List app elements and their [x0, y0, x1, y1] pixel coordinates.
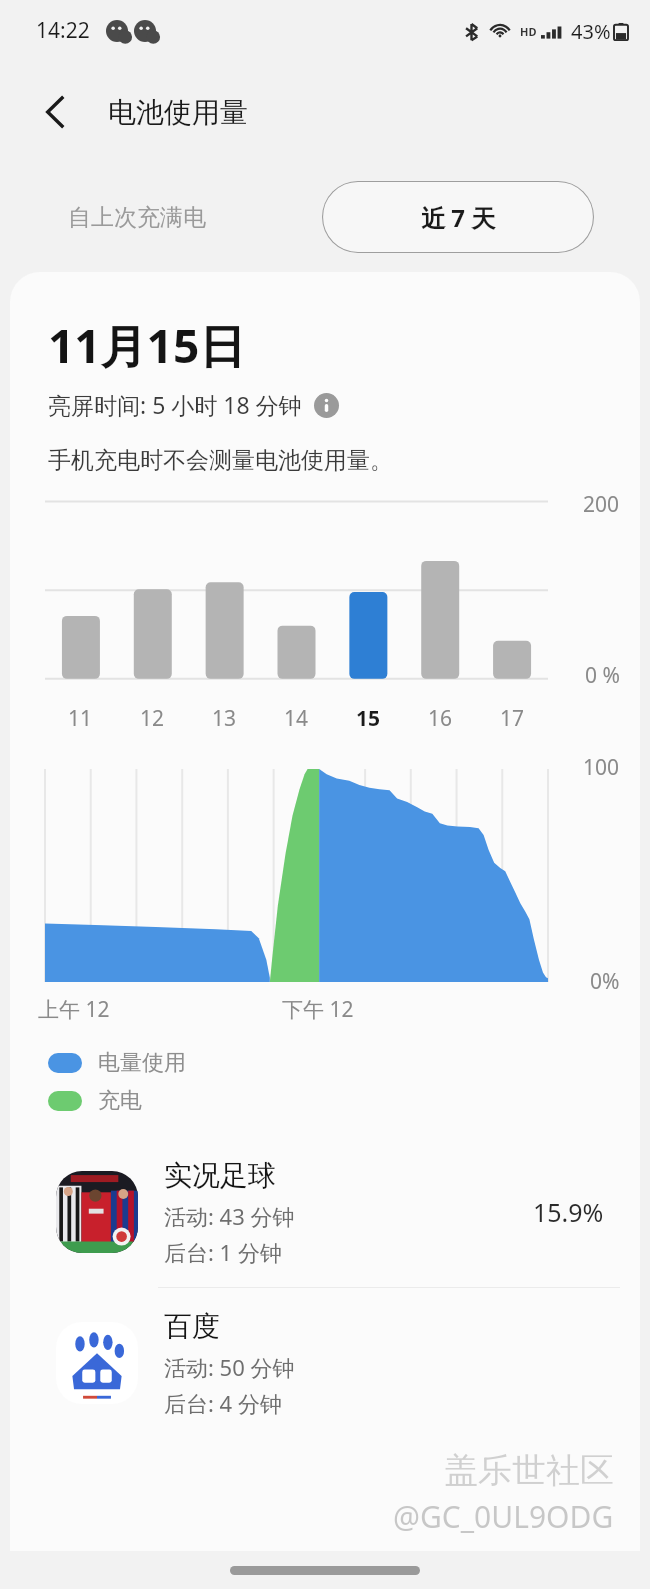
- button[interactable]: [10, 745, 640, 1045]
- staticText: 自上次充满电: [68, 203, 206, 232]
- staticText: 0 %: [585, 661, 620, 690]
- button[interactable]: 自上次充满电: [56, 185, 218, 249]
- staticText: 亮屏时间: 5 小时 18 分钟: [48, 389, 302, 420]
- button[interactable]: 百度: [10, 1288, 640, 1438]
- button[interactable]: [10, 475, 640, 745]
- staticText: 上午 12: [38, 995, 110, 1024]
- staticText: 百度: [164, 1309, 220, 1344]
- staticText: 12: [140, 704, 165, 733]
- staticText: 11: [68, 704, 93, 733]
- staticText: 后台: 1 分钟: [164, 1237, 282, 1267]
- staticText: 活动: 50 分钟: [164, 1352, 295, 1382]
- staticText: 后台: 4 分钟: [164, 1388, 282, 1418]
- staticText: 17: [500, 704, 525, 733]
- staticText: 充电: [98, 1087, 142, 1115]
- staticText: 下午 12: [282, 995, 354, 1024]
- staticText: 实况足球: [164, 1158, 276, 1193]
- staticText: 16: [428, 704, 453, 733]
- staticText: 0%: [590, 967, 620, 996]
- button[interactable]: 近 7 天: [322, 181, 594, 253]
- staticText: 100: [583, 753, 620, 782]
- staticText: HD: [520, 24, 537, 39]
- staticText: 活动: 43 分钟: [164, 1201, 295, 1231]
- staticText: @GC_0UL9ODG: [393, 1496, 614, 1537]
- button[interactable]: 实况足球: [10, 1137, 640, 1287]
- staticText: 15: [356, 704, 381, 733]
- staticText: 15.9%: [533, 1195, 604, 1229]
- button[interactable]: Back: [28, 84, 84, 140]
- staticText: 43%: [571, 18, 611, 45]
- staticText: 电量使用: [98, 1049, 186, 1077]
- staticText: 14:22: [36, 16, 90, 45]
- staticText: 电池使用量: [108, 95, 248, 130]
- button[interactable]: Info: [312, 391, 340, 419]
- staticText: 11月15日: [48, 314, 246, 377]
- staticText: 200: [583, 490, 620, 519]
- staticText: 14: [284, 704, 309, 733]
- staticText: 近 7 天: [421, 201, 496, 234]
- staticText: 手机充电时不会测量电池使用量。: [48, 446, 393, 475]
- staticText: 盖乐世社区: [444, 1449, 614, 1492]
- staticText: 13: [212, 704, 237, 733]
